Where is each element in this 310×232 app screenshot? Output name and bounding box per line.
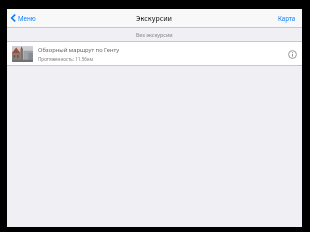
staticText: Экскурсии	[136, 14, 173, 23]
button[interactable]: Меню	[7, 9, 42, 27]
staticText: Карта	[278, 14, 296, 22]
staticText: Обзорный маршрут по Генту	[38, 46, 120, 54]
staticText: Без экскурсии	[136, 31, 173, 38]
button[interactable]: Обзорный маршрут по Генту	[7, 42, 302, 65]
staticText: Протяженность: 11.56км	[38, 56, 93, 62]
button[interactable]: Карта	[272, 9, 302, 27]
button[interactable]: Подробнее	[285, 47, 299, 61]
staticText: Меню	[18, 14, 36, 22]
